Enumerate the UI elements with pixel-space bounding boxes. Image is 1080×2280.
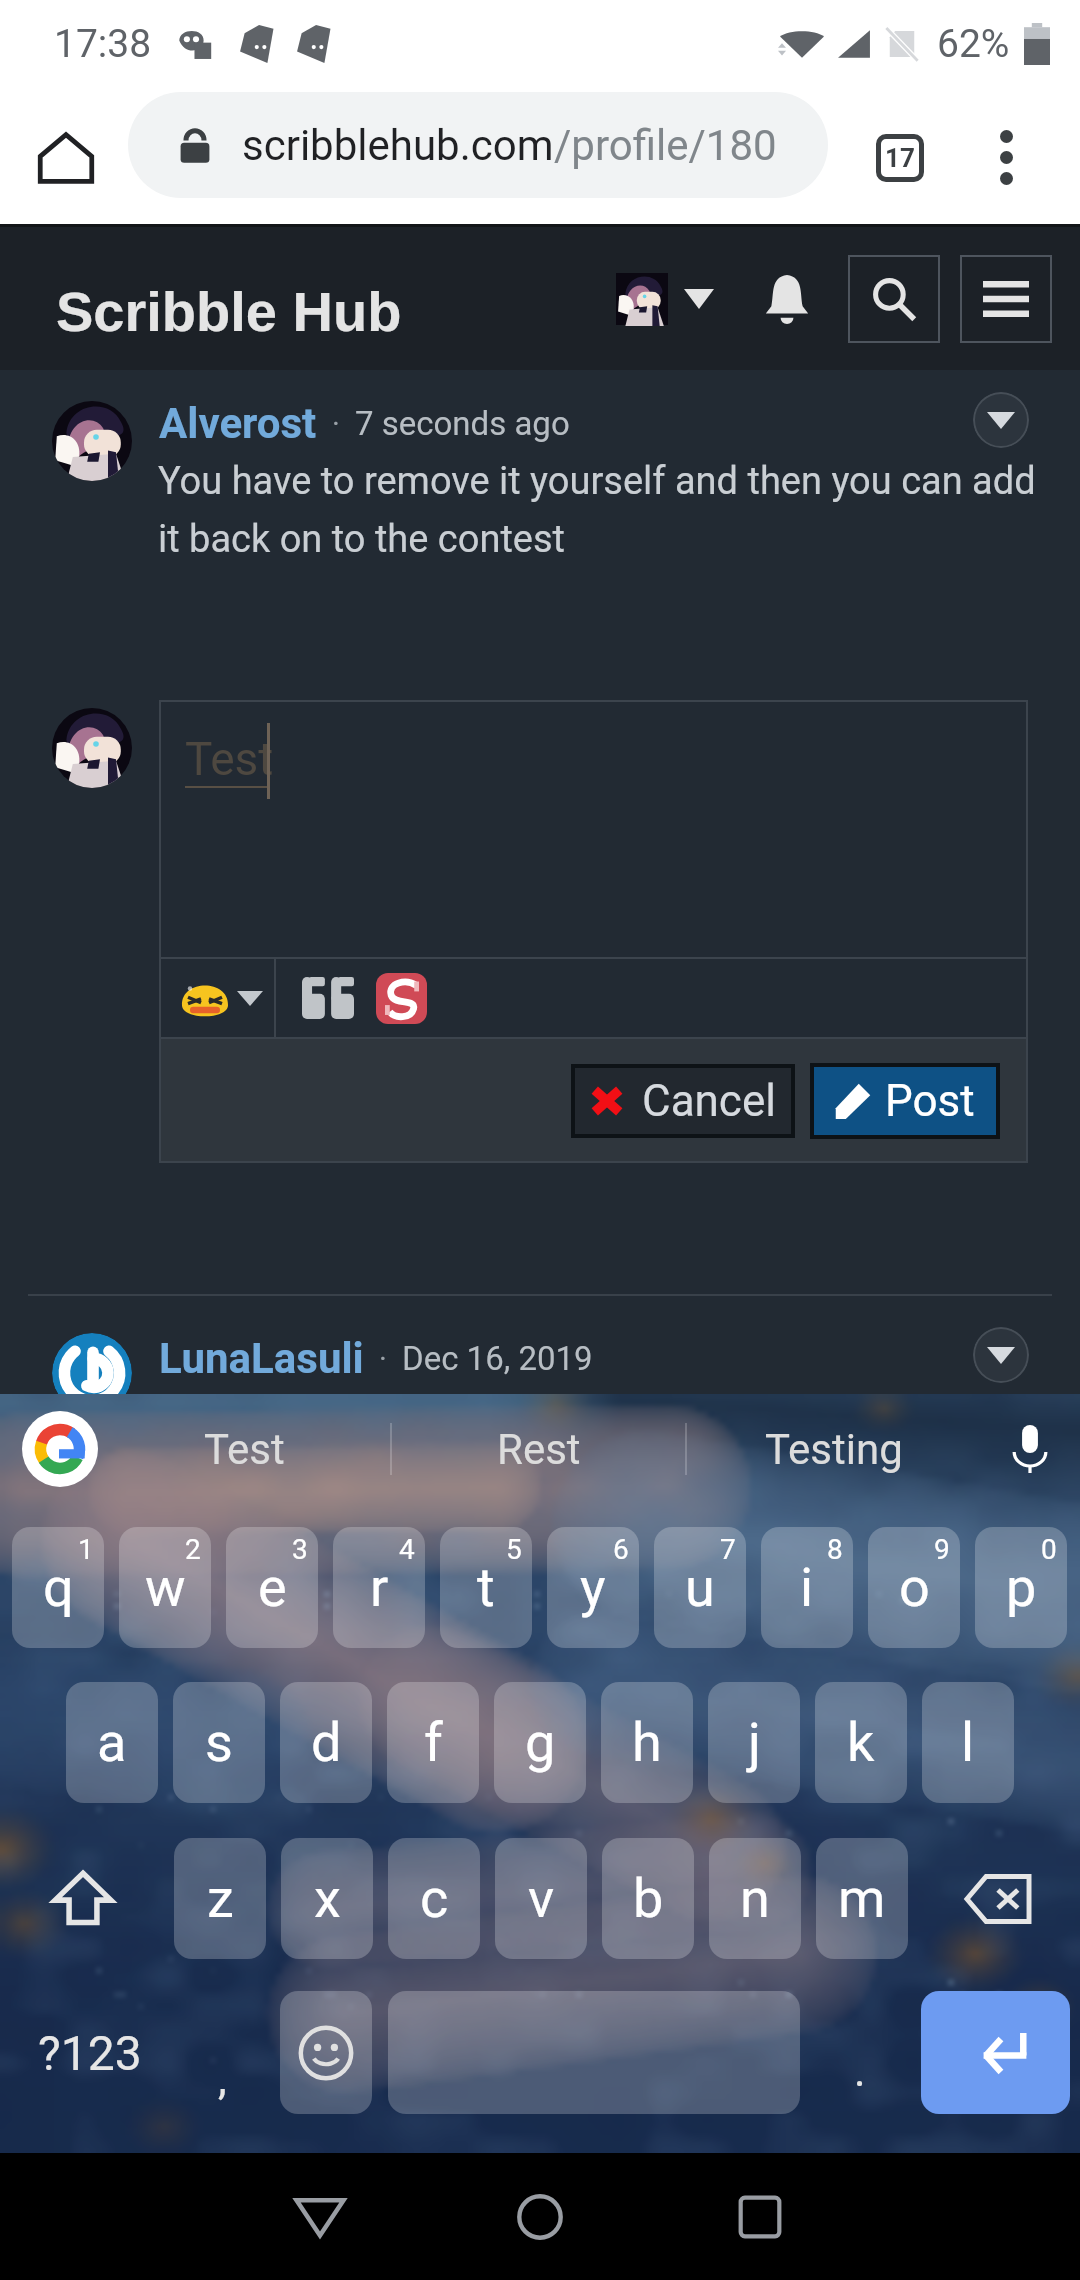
button[interactable] [616,273,714,325]
staticText: s [205,1711,233,1774]
staticText: d [311,1711,342,1774]
staticText: Dec 16, 2019 [402,1339,593,1378]
button[interactable]: Back [265,2162,375,2272]
staticText: m [838,1867,886,1930]
staticText: 6 [613,1533,629,1566]
button[interactable]: Tabs [845,88,955,227]
button[interactable] [302,977,354,1019]
button[interactable]: Shift [10,1838,155,1959]
button[interactable]: x [281,1838,373,1959]
button[interactable]: Comment options [973,1327,1029,1383]
button[interactable]: w [119,1527,211,1648]
button[interactable]: y [547,1527,639,1648]
staticText: 2 [185,1533,201,1566]
staticText: 3 [292,1533,308,1566]
staticText: 17 [885,143,915,173]
button[interactable]: e [226,1527,318,1648]
button[interactable]: Post [814,1067,996,1135]
button[interactable]: c [388,1838,480,1959]
button[interactable]: Enter [921,1991,1070,2114]
button[interactable]: p [975,1527,1067,1648]
button[interactable]: r [333,1527,425,1648]
staticText: y [580,1556,606,1619]
button[interactable]: Emoji [280,1991,372,2114]
button[interactable]: o [868,1527,960,1648]
staticText: · [364,1341,402,1376]
staticText: ?123 [38,2025,142,2081]
button[interactable]: scribblehub.com [128,92,828,198]
staticText: Rest [497,1425,581,1474]
staticText: 4 [399,1533,415,1566]
staticText: 7 [720,1533,736,1566]
button[interactable]: Scribble Hub [56,280,402,343]
button[interactable]: Search [848,255,940,343]
staticText: u [685,1556,715,1619]
button[interactable]: g [494,1682,586,1803]
staticText: r [370,1556,389,1619]
button[interactable]: Space [388,1991,800,2114]
button[interactable]: a [66,1682,158,1803]
button[interactable]: n [709,1838,801,1959]
staticText: Post [885,1075,975,1127]
staticText: c [420,1867,449,1930]
staticText: n [740,1867,770,1930]
button[interactable]: i [761,1527,853,1648]
button[interactable]: Google [22,1411,98,1487]
staticText: j [748,1711,761,1774]
staticText: a [97,1711,127,1774]
button[interactable]: Voice input [980,1394,1080,1504]
button[interactable]: t [440,1527,532,1648]
staticText: q [43,1556,74,1619]
button[interactable]: Notifications [752,264,822,334]
staticText: · [317,406,355,441]
button[interactable]: v [495,1838,587,1959]
button[interactable] [159,959,274,1037]
button[interactable]: Menu [960,255,1052,343]
button[interactable]: Rest [392,1394,685,1504]
staticText: x [314,1867,341,1930]
staticText: scribblehub.com [242,121,554,170]
staticText: /profile/180 [554,121,777,170]
button[interactable]: q [12,1527,104,1648]
button[interactable]: ?123 [10,1991,170,2114]
staticText: 17:38 [54,21,152,67]
staticText: l [961,1711,975,1774]
button[interactable]: b [602,1838,694,1959]
staticText: z [207,1867,234,1930]
button[interactable] [376,973,427,1024]
staticText: . [854,2045,866,2097]
button[interactable]: Recents [705,2162,815,2272]
button[interactable]: z [174,1838,266,1959]
button[interactable]: Test [98,1394,390,1504]
staticText: Cancel [642,1075,776,1127]
button[interactable]: LunaLasuli [159,1334,364,1383]
button[interactable]: j [708,1682,800,1803]
staticText: p [1006,1556,1037,1619]
staticText: o [899,1556,930,1619]
button[interactable]: m [816,1838,908,1959]
button[interactable]: , [172,1991,272,2114]
button[interactable]: d [280,1682,372,1803]
button[interactable]: Alverost [159,399,317,448]
staticText: t [477,1556,495,1619]
button[interactable]: u [654,1527,746,1648]
button[interactable]: . [810,1991,910,2114]
button[interactable]: Backspace [925,1838,1070,1959]
staticText: b [633,1867,664,1930]
staticText: , [218,2053,227,2105]
button[interactable]: k [815,1682,907,1803]
button[interactable]: Testing [687,1394,980,1504]
staticText: k [847,1711,875,1774]
button[interactable]: More options [956,88,1056,227]
staticText: 8 [827,1533,843,1566]
staticText: 9 [934,1533,950,1566]
button[interactable]: h [601,1682,693,1803]
button[interactable]: Cancel [575,1068,791,1134]
button[interactable]: l [922,1682,1014,1803]
button[interactable]: s [173,1682,265,1803]
button[interactable]: Home [485,2162,595,2272]
button[interactable]: Home [22,88,110,227]
button[interactable]: Comment options [973,392,1029,448]
staticText: 5 [506,1533,522,1566]
button[interactable]: f [387,1682,479,1803]
